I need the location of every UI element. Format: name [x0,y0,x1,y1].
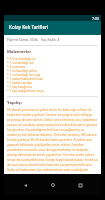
staticText: * 1 çay kaşığı tuz [7,85,33,89]
staticText: * 1 su bardağı süt [7,61,34,65]
staticText: * 1 su bardağı şeker [7,69,38,73]
staticText: 7:00 [92,16,100,21]
button[interactable]: Recents [73,178,87,192]
staticText: * 1 çay kaşığı limon suyu [7,89,44,93]
staticText: * 2,5 su bardağı un [7,57,36,61]
staticText: * 1 paket vanilya [7,81,32,85]
button[interactable]: Back [18,178,32,192]
staticText: * 4 yumurta [7,65,26,69]
staticText: Yapılışı [7,100,22,106]
staticText: Pişirme Süresi: 30 dk. Kaç Kişilik: 4 [7,38,60,42]
staticText: İlk olarak yumurta ve şekeri derin bir k… [7,108,98,174]
staticText: Malzemeler [7,49,32,55]
button[interactable]: Home [46,178,60,192]
staticText: * 1 su bardağı sıvı yağ [7,73,40,77]
button[interactable]: Kolay Kek Tarifleri [4,21,101,35]
staticText: * 1 paket kabartma tozu [7,77,44,81]
staticText: Kolay Kek Tarifleri [9,24,49,30]
